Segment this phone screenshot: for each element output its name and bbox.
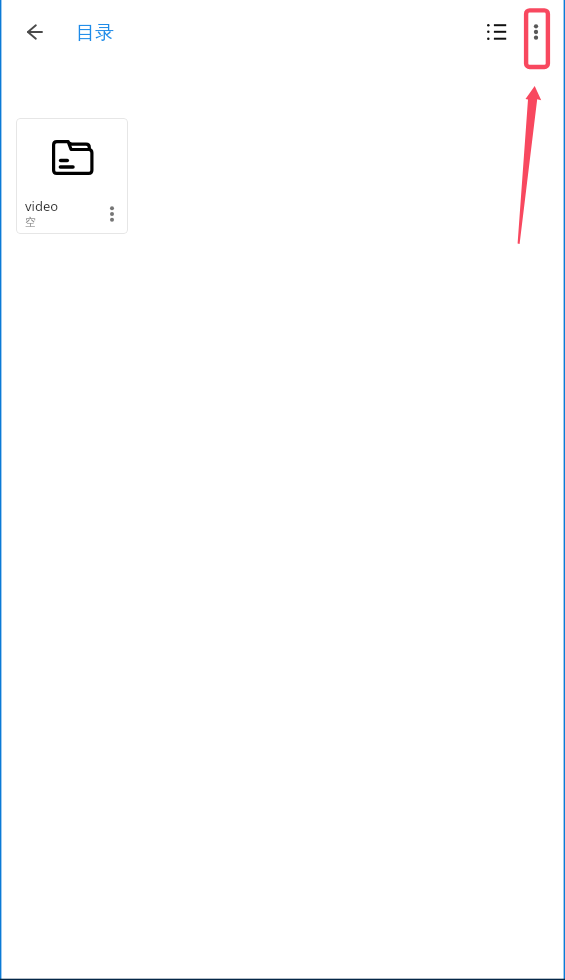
button[interactable]: Back: [12, 9, 58, 55]
staticText: 目录: [76, 21, 114, 45]
staticText: 空: [25, 215, 36, 229]
staticText: video: [25, 197, 59, 215]
button[interactable]: video: [16, 118, 128, 234]
button[interactable]: Item options: [102, 204, 122, 224]
button[interactable]: List view: [478, 10, 516, 54]
button[interactable]: More options: [518, 10, 554, 54]
